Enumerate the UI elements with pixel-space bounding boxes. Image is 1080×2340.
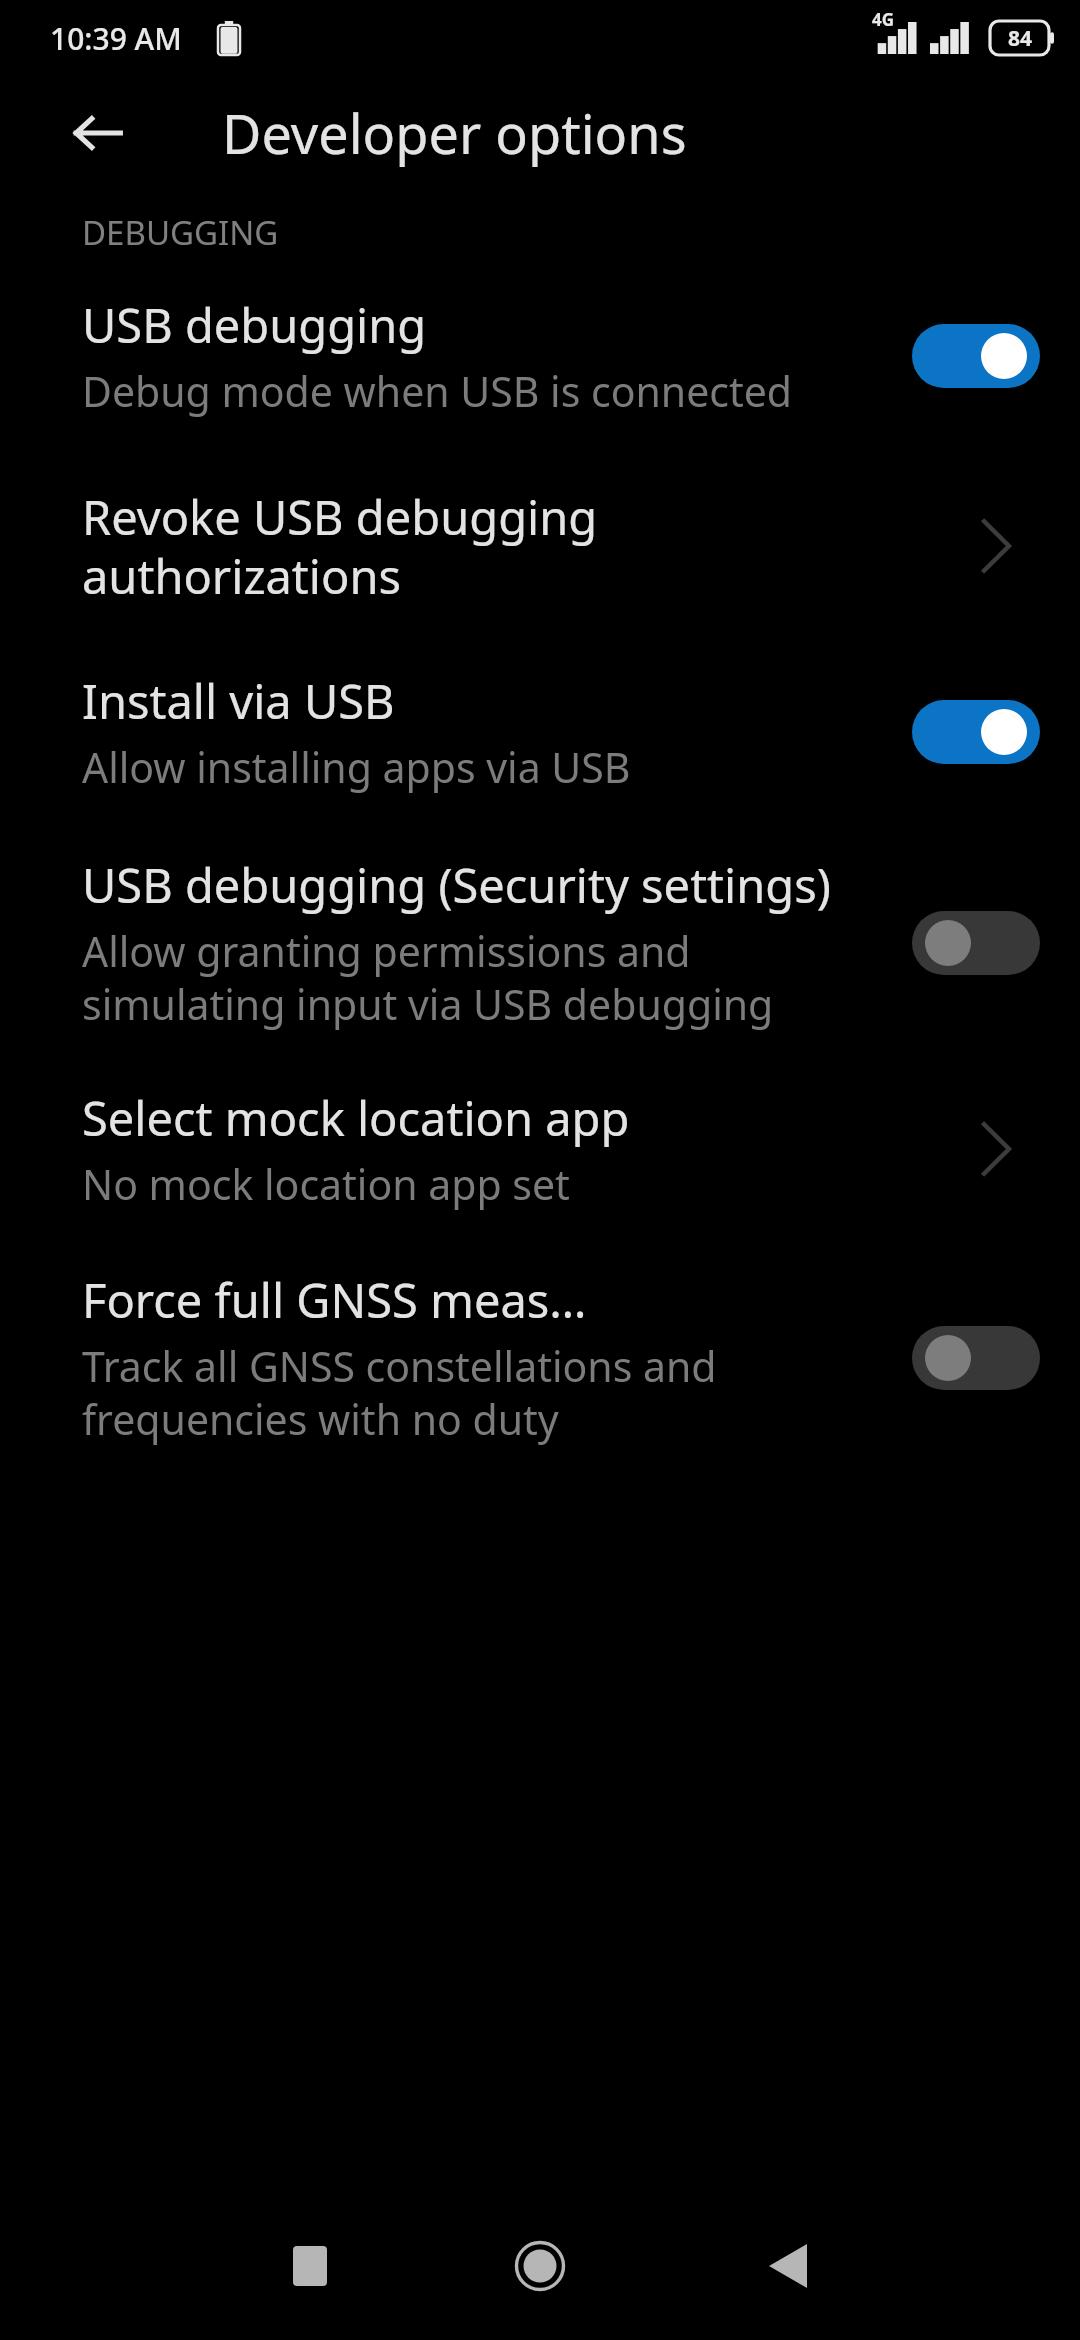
- staticText: Revoke USB debugging authorizations: [82, 485, 924, 607]
- button[interactable]: Force full GNSS meas…: [0, 1268, 1080, 1447]
- staticText: Allow granting permissions and simulatin…: [82, 923, 884, 1032]
- button[interactable]: Toggle off: [912, 1320, 1040, 1396]
- staticText: Allow installing apps via USB: [82, 739, 631, 795]
- staticText: 84: [1008, 24, 1033, 53]
- staticText: USB debugging (Security settings): [82, 853, 831, 917]
- button[interactable]: Home: [494, 2220, 586, 2312]
- button[interactable]: Select mock location app: [0, 1086, 1080, 1212]
- other: Open: [952, 1105, 1040, 1193]
- other: Open: [952, 502, 1040, 590]
- staticText: No mock location app set: [82, 1156, 570, 1212]
- button[interactable]: Back: [746, 2224, 830, 2308]
- staticText: DEBUGGING: [82, 210, 279, 255]
- button[interactable]: Toggle off: [912, 905, 1040, 981]
- button[interactable]: Back: [62, 97, 134, 169]
- staticText: Select mock location app: [82, 1086, 630, 1150]
- staticText: Install via USB: [82, 669, 395, 733]
- button[interactable]: Toggle on: [912, 318, 1040, 394]
- staticText: 10:39 AM: [50, 18, 182, 59]
- staticText: Debug mode when USB is connected: [82, 363, 793, 419]
- button[interactable]: Toggle on: [912, 694, 1040, 770]
- button[interactable]: USB debugging (Security settings): [0, 853, 1080, 1032]
- button[interactable]: Revoke USB debugging authorizations: [0, 485, 1080, 607]
- staticText: Force full GNSS meas…: [82, 1268, 587, 1332]
- staticText: USB debugging: [82, 293, 427, 357]
- button[interactable]: Install via USB: [0, 669, 1080, 795]
- staticText: Developer options: [222, 96, 687, 170]
- staticText: Track all GNSS constellations and freque…: [82, 1338, 884, 1447]
- button[interactable]: Recent apps: [268, 2224, 352, 2308]
- button[interactable]: USB debugging: [0, 293, 1080, 419]
- staticText: 4G: [872, 8, 895, 31]
